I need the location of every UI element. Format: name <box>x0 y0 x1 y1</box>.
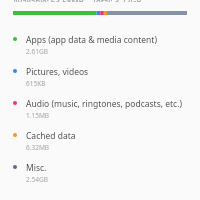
button[interactable] <box>13 11 187 15</box>
button[interactable]: Audio (music, ringtones, podcasts, etc.) <box>0 93 200 125</box>
staticText: Cached data <box>26 130 76 142</box>
button[interactable]: Pictures, videos <box>0 61 200 93</box>
staticText: 6.32MB <box>26 143 50 152</box>
staticText: 615KB <box>26 79 46 88</box>
staticText: 2.61GB <box>26 47 48 56</box>
staticText: Pictures, videos <box>26 66 89 78</box>
button[interactable]: Misc. <box>0 157 200 189</box>
button[interactable]: Apps (app data & media content) <box>0 29 200 61</box>
staticText: Misc. <box>26 162 47 174</box>
staticText: 2.54GB <box>26 175 48 184</box>
button[interactable]: Cached data <box>0 125 200 157</box>
staticText: Audio (music, ringtones, podcasts, etc.) <box>26 98 182 110</box>
staticText: 1.15MB <box>26 111 50 120</box>
staticText: Apps (app data & media content) <box>26 34 157 46</box>
staticText: Available: 63.58MB Total: 3.22GB <box>13 0 142 2</box>
